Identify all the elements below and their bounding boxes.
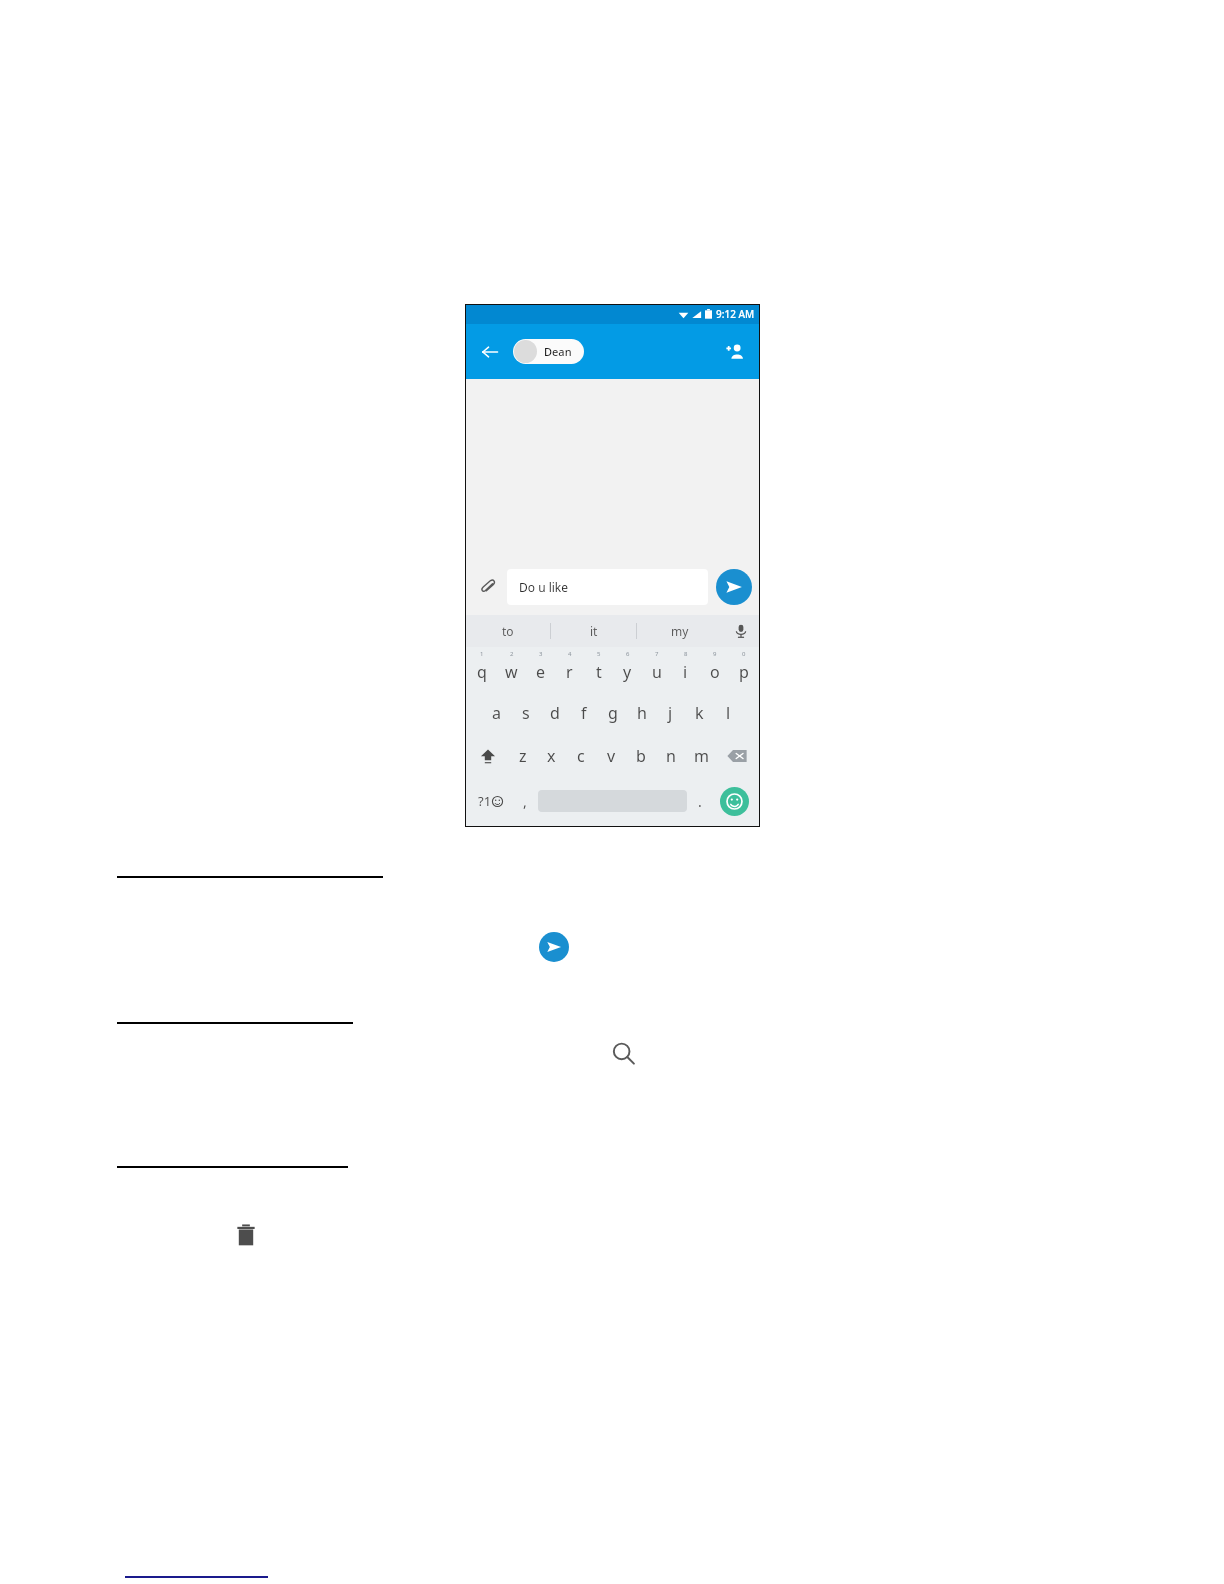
staticText: g <box>608 702 618 724</box>
button[interactable]: 8 <box>671 647 700 691</box>
button[interactable]: Add person <box>720 337 750 367</box>
staticText: b <box>636 745 646 767</box>
staticText: . <box>698 792 702 811</box>
button[interactable]: to <box>465 615 550 647</box>
button[interactable]: Emoji <box>720 787 749 816</box>
button[interactable]: v <box>596 734 626 777</box>
button[interactable]: 5 <box>584 647 613 691</box>
staticText: my <box>671 623 689 639</box>
button[interactable]: 3 <box>526 647 555 691</box>
button[interactable]: d <box>540 691 569 734</box>
staticText: l <box>726 702 731 724</box>
staticText: q <box>477 661 487 683</box>
staticText: , <box>523 792 527 811</box>
button[interactable]: 7 <box>642 647 671 691</box>
button[interactable]: 4 <box>555 647 584 691</box>
button[interactable]: Voice input <box>722 615 760 647</box>
staticText: 0 <box>742 650 746 658</box>
button[interactable]: it <box>551 615 636 647</box>
staticText: a <box>492 702 501 724</box>
staticText: w <box>505 661 518 683</box>
staticText: i <box>683 661 688 683</box>
button[interactable]: c <box>566 734 596 777</box>
staticText: h <box>637 702 647 724</box>
button[interactable]: 2 <box>497 647 526 691</box>
staticText: u <box>652 661 662 683</box>
button[interactable]: h <box>627 691 656 734</box>
button[interactable]: f <box>569 691 598 734</box>
staticText: 3 <box>539 650 543 658</box>
button[interactable]: l <box>714 691 743 734</box>
button[interactable]: b <box>626 734 656 777</box>
button[interactable]: ?1 <box>469 777 512 825</box>
staticText: j <box>668 702 673 724</box>
staticText: t <box>596 661 602 683</box>
staticText: f <box>581 702 587 724</box>
staticText: to <box>502 623 514 639</box>
staticText: 8 <box>684 650 688 658</box>
button[interactable]: m <box>686 734 716 777</box>
button[interactable]: j <box>656 691 685 734</box>
staticText: z <box>519 745 527 767</box>
button[interactable]: Backspace <box>716 734 758 777</box>
button[interactable]: Back <box>475 337 505 367</box>
staticText: p <box>739 661 749 683</box>
staticText: Dean <box>544 344 572 359</box>
button[interactable]: s <box>511 691 540 734</box>
button[interactable]: 0 <box>729 647 758 691</box>
button[interactable]: . <box>687 777 713 825</box>
staticText: 4 <box>568 650 572 658</box>
button[interactable]: z <box>508 734 537 777</box>
staticText: k <box>695 702 704 724</box>
button[interactable]: Dean <box>513 339 584 364</box>
staticText: 9:12 AM <box>716 307 755 321</box>
button[interactable]: 1 <box>467 647 497 691</box>
staticText: 7 <box>655 650 659 658</box>
button[interactable]: Attach <box>473 572 503 602</box>
button[interactable]: Delete <box>231 1220 261 1250</box>
staticText: m <box>694 745 709 767</box>
button[interactable]: my <box>637 615 722 647</box>
staticText: 1 <box>480 650 484 658</box>
staticText: e <box>536 661 546 683</box>
staticText: 6 <box>626 650 630 658</box>
button[interactable]: x <box>537 734 566 777</box>
staticText: x <box>547 745 556 767</box>
staticText: d <box>550 702 560 724</box>
button[interactable]: 9 <box>700 647 729 691</box>
staticText: s <box>522 702 530 724</box>
staticText: 5 <box>597 650 601 658</box>
button[interactable]: Send <box>716 569 752 605</box>
staticText: Do u like <box>519 579 569 595</box>
button[interactable]: k <box>685 691 714 734</box>
staticText: c <box>577 745 585 767</box>
staticText: 2 <box>510 650 514 658</box>
button[interactable]: Search <box>608 1038 640 1070</box>
button[interactable]: , <box>512 777 538 825</box>
staticText: ?1 <box>478 792 492 810</box>
staticText: y <box>623 661 632 683</box>
staticText: it <box>590 623 598 639</box>
button[interactable]: 6 <box>613 647 642 691</box>
button[interactable]: a <box>482 691 511 734</box>
button[interactable]: n <box>656 734 686 777</box>
staticText: r <box>566 661 573 683</box>
staticText: o <box>710 661 720 683</box>
staticText: 9 <box>713 650 717 658</box>
staticText: n <box>666 745 676 767</box>
button[interactable]: Shift <box>467 734 508 777</box>
button[interactable]: Do u like <box>507 569 708 605</box>
button[interactable]: g <box>598 691 627 734</box>
staticText: v <box>607 745 616 767</box>
button[interactable]: Send <box>539 932 569 962</box>
